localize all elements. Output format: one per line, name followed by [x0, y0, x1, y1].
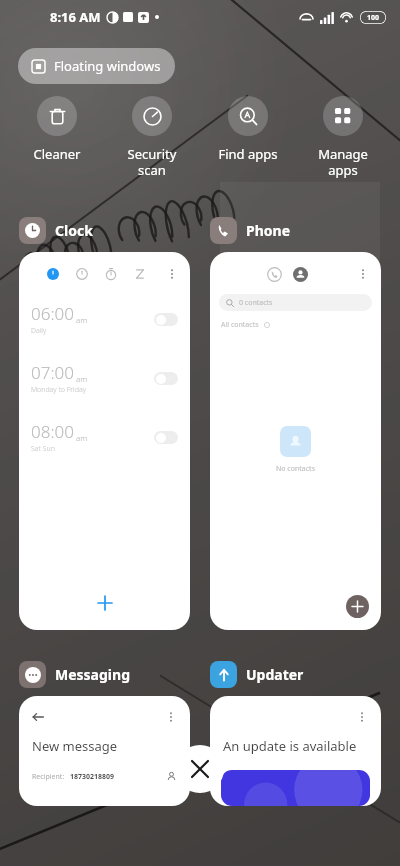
button[interactable]: More options	[210, 252, 381, 630]
button[interactable]: More options	[354, 709, 370, 725]
button[interactable]: Back	[19, 696, 190, 806]
button[interactable]: Manage apps	[298, 96, 388, 179]
button[interactable]: Phone	[210, 217, 295, 244]
staticText: 0 contacts	[239, 298, 273, 308]
staticText: Security scan	[107, 145, 197, 179]
button[interactable]: More options	[210, 696, 381, 806]
staticText: am	[76, 432, 88, 443]
staticText: Sat Sun	[31, 444, 55, 454]
staticText: 06:00	[31, 302, 74, 325]
staticText: Cleaner	[12, 145, 102, 163]
button[interactable]: Updater	[210, 661, 308, 688]
button[interactable]: Add alarm	[90, 588, 120, 618]
button[interactable]: Security scan	[107, 96, 197, 179]
staticText: Updater	[246, 665, 304, 684]
staticText: Recipient:	[32, 772, 65, 782]
staticText: am	[76, 373, 88, 384]
button[interactable]: More options	[19, 252, 190, 630]
button[interactable]: Close all	[176, 745, 224, 793]
staticText: An update is available	[223, 737, 357, 755]
staticText: Messaging	[55, 665, 130, 684]
button[interactable]: Find apps	[203, 96, 293, 163]
staticText: 8:16 AM	[50, 8, 101, 26]
button[interactable]: Messaging	[19, 661, 134, 688]
staticText: Daily	[31, 326, 47, 336]
button[interactable]: Cleaner	[12, 96, 102, 163]
button[interactable]: 08:00	[19, 420, 190, 454]
staticText: Phone	[246, 221, 291, 240]
button[interactable]: More options	[163, 709, 179, 725]
staticText: am	[76, 314, 88, 325]
staticText: Manage apps	[298, 145, 388, 179]
staticText: Clock	[55, 221, 93, 240]
button[interactable]: Clock	[19, 217, 97, 244]
button[interactable]: 06:00	[19, 302, 190, 336]
staticText: 100	[367, 13, 380, 23]
button[interactable]: 0 contacts	[219, 294, 372, 311]
button[interactable]: Toggle alarm 08:00	[154, 431, 178, 444]
button[interactable]: Floating windows	[18, 48, 175, 84]
button[interactable]: Toggle alarm 07:00	[154, 372, 178, 385]
staticText: New message	[32, 737, 118, 755]
staticText: No contacts	[276, 464, 315, 474]
staticText: Monday to Friday	[31, 385, 86, 395]
button[interactable]: More options	[355, 266, 371, 282]
button[interactable]: More options	[164, 266, 180, 282]
button[interactable]: Back	[30, 709, 46, 725]
staticText: 07:00	[31, 361, 74, 384]
staticText: All contacts	[221, 320, 259, 330]
button[interactable]: Toggle alarm 06:00	[154, 313, 178, 326]
button[interactable]: 07:00	[19, 361, 190, 395]
staticText: Find apps	[203, 145, 293, 163]
staticText: Floating windows	[54, 57, 161, 75]
staticText: 08:00	[31, 420, 74, 443]
staticText: 18730218809	[70, 772, 115, 782]
button[interactable]: Add contact	[346, 595, 369, 618]
